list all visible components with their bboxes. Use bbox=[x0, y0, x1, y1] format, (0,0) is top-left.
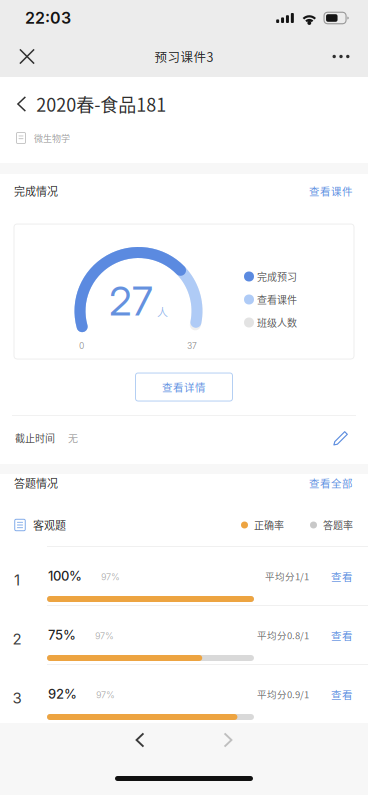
staticText: 平均分0.8/1 bbox=[257, 628, 309, 642]
button[interactable]: 查看全部 bbox=[289, 465, 353, 501]
staticText: 平均分1/1 bbox=[265, 569, 309, 583]
staticText: 2020春-食品181 bbox=[36, 91, 166, 117]
staticText: 97% bbox=[96, 690, 115, 700]
staticText: 微生物学 bbox=[34, 131, 70, 144]
staticText: 97% bbox=[95, 631, 114, 641]
button[interactable]: 下一页 bbox=[205, 718, 251, 762]
staticText: 正确率 bbox=[254, 518, 284, 532]
staticText: 100% bbox=[48, 568, 82, 584]
button[interactable]: 上一页 bbox=[117, 718, 163, 762]
staticText: 查看 bbox=[331, 569, 353, 584]
button[interactable]: 3 bbox=[0, 664, 368, 723]
staticText: 答题率 bbox=[323, 518, 353, 532]
button[interactable]: 关闭 bbox=[4, 36, 50, 77]
staticText: 查看课件 bbox=[309, 183, 353, 199]
staticText: 2 bbox=[12, 630, 21, 648]
button[interactable]: 编辑 bbox=[323, 420, 359, 456]
staticText: 3 bbox=[12, 689, 21, 707]
staticText: 人 bbox=[157, 304, 168, 320]
staticText: 0 bbox=[79, 341, 84, 351]
button[interactable]: 2020春-食品181 bbox=[0, 87, 368, 121]
staticText: 97% bbox=[101, 572, 120, 582]
staticText: 预习课件3 bbox=[154, 47, 213, 66]
staticText: 完成预习 bbox=[257, 269, 297, 284]
staticText: 班级人数 bbox=[257, 315, 297, 330]
staticText: 22:03 bbox=[25, 8, 71, 28]
button[interactable]: 查看详情 bbox=[135, 373, 232, 401]
staticText: 答题情况 bbox=[14, 475, 58, 491]
staticText: 1 bbox=[14, 571, 20, 589]
staticText: 查看详情 bbox=[162, 379, 206, 395]
staticText: 平均分0.9/1 bbox=[257, 687, 309, 701]
button[interactable]: 查看课件 bbox=[289, 173, 353, 209]
staticText: 查看全部 bbox=[309, 475, 353, 491]
staticText: 查看课件 bbox=[257, 292, 297, 307]
staticText: 查看 bbox=[331, 628, 353, 643]
staticText: 无 bbox=[68, 431, 78, 445]
staticText: 客观题 bbox=[33, 517, 66, 533]
button[interactable]: 2 bbox=[0, 605, 368, 664]
button[interactable]: 1 bbox=[0, 546, 368, 605]
staticText: 37 bbox=[187, 341, 197, 351]
staticText: 截止时间 bbox=[15, 431, 55, 445]
staticText: 75% bbox=[48, 627, 76, 643]
button[interactable]: 更多 bbox=[318, 36, 364, 77]
staticText: 27 bbox=[109, 277, 153, 325]
staticText: 92% bbox=[48, 686, 77, 702]
staticText: 查看 bbox=[331, 687, 353, 702]
staticText: 完成情况 bbox=[14, 183, 58, 199]
